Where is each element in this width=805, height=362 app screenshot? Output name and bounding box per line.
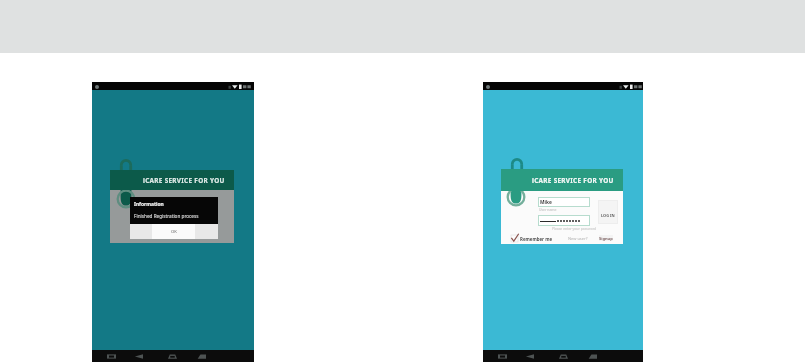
staticText: Information	[134, 201, 164, 208]
button[interactable]: Menu	[192, 350, 212, 362]
button[interactable]	[538, 215, 590, 226]
staticText: Mike	[540, 199, 552, 206]
button[interactable]: Mike	[538, 197, 590, 207]
button[interactable]: Signup	[599, 235, 613, 241]
button[interactable]: Recent apps	[102, 350, 122, 362]
staticText: LOG IN	[601, 213, 615, 218]
button[interactable]: Home	[163, 350, 183, 362]
staticText: Finished Registration process	[134, 213, 199, 219]
button[interactable]: Menu	[583, 350, 603, 362]
button[interactable]: New user?	[568, 236, 588, 241]
button[interactable]: Home	[554, 350, 574, 362]
button[interactable]: Recent apps	[493, 350, 513, 362]
staticText: OK	[171, 229, 177, 235]
staticText: Signup	[599, 236, 613, 241]
button[interactable]: OK	[152, 224, 195, 239]
button[interactable]: Back	[520, 350, 540, 362]
staticText: User name	[539, 207, 557, 212]
button[interactable]: LOG IN	[598, 200, 618, 224]
staticText: Please enter your password	[552, 226, 597, 231]
button[interactable]: Remember me	[511, 235, 553, 242]
button[interactable]: Back	[129, 350, 149, 362]
staticText: iCARE SERVICE FOR YOU	[532, 176, 614, 185]
staticText: iCARE SERVICE FOR YOU	[143, 176, 225, 185]
staticText: Remember me	[520, 236, 553, 242]
